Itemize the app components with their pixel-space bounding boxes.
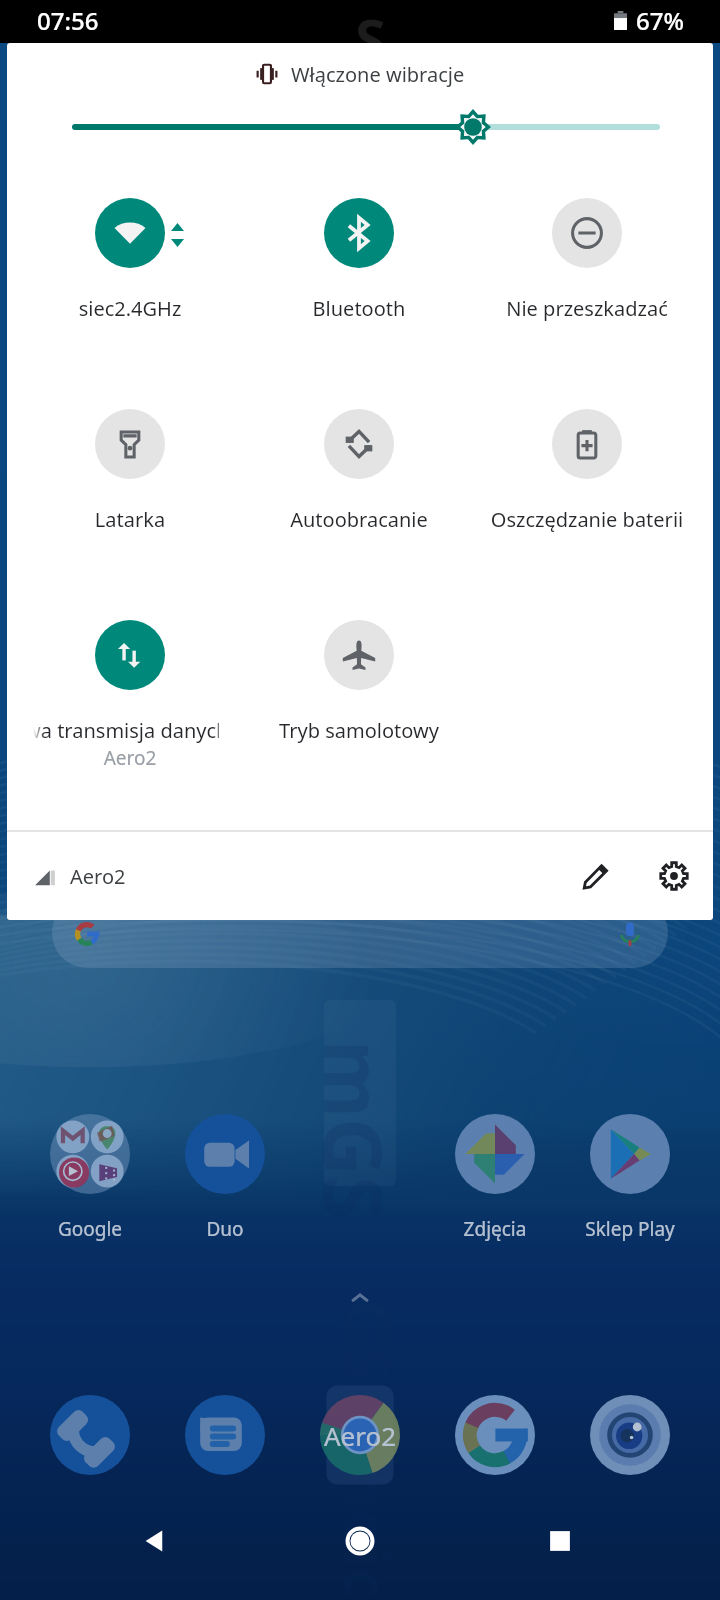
button[interactable]: Camera	[590, 1395, 670, 1475]
staticText: Google	[23, 1216, 157, 1242]
staticText: GSMchoice	[310, 1300, 410, 1600]
button[interactable]: Aero2	[34, 863, 126, 890]
staticText: 67%	[636, 4, 684, 37]
staticText: siec2.4GHz	[20, 295, 240, 322]
staticText: Nie przeszkadzać	[477, 295, 697, 322]
button[interactable]: Tryb samolotowy	[249, 620, 469, 780]
staticText: Aero2	[70, 863, 126, 890]
button[interactable]: Oszczędzanie baterii	[477, 409, 697, 569]
staticText: Oszczędzanie baterii	[477, 506, 697, 533]
button[interactable]: Back	[130, 1515, 182, 1567]
button[interactable]: Zdjęcia	[428, 1114, 562, 1244]
button[interactable]: Bluetooth	[249, 198, 469, 358]
staticText: 07:56	[37, 4, 99, 37]
button[interactable]: Sklep Play	[563, 1114, 697, 1244]
staticText: Włączone wibracje	[291, 61, 465, 88]
button[interactable]: Google	[455, 1395, 535, 1475]
button[interactable]: Recents	[534, 1515, 586, 1567]
button[interactable]: Search	[52, 898, 668, 968]
staticText: Zdjęcia	[428, 1216, 562, 1242]
button[interactable]: Settings	[650, 852, 698, 900]
staticText: wa transmisja danych	[33, 717, 219, 744]
button[interactable]: Autoobracanie	[249, 409, 469, 569]
button[interactable]: Home	[334, 1515, 386, 1567]
staticText: Aero2	[20, 745, 240, 771]
staticText: Latarka	[20, 506, 240, 533]
button[interactable]: Włączone wibracje	[7, 55, 713, 93]
staticText: Tryb samolotowy	[249, 717, 469, 744]
button[interactable]: Messages	[185, 1395, 265, 1475]
staticText: Autoobracanie	[249, 506, 469, 533]
button[interactable]: Latarka	[20, 409, 240, 569]
staticText: Duo	[158, 1216, 292, 1242]
button[interactable]: Nie przeszkadzać	[477, 198, 697, 358]
button[interactable]: Duo	[158, 1114, 292, 1244]
button[interactable]: Chrome	[320, 1395, 400, 1475]
staticText: Sklep Play	[563, 1216, 697, 1242]
button[interactable]: Google	[23, 1114, 157, 1244]
button[interactable]: Edit	[572, 852, 620, 900]
staticText: Aero2	[290, 1418, 430, 1453]
staticText: S	[355, 0, 386, 43]
button[interactable]: siec2.4GHz	[20, 198, 240, 358]
staticText: Bluetooth	[249, 295, 469, 322]
button[interactable]: Brightness	[7, 100, 713, 152]
button[interactable]: Phone	[50, 1395, 130, 1475]
button[interactable]: wa transmisja danych	[20, 620, 240, 780]
staticText: mGSM	[310, 1040, 410, 1260]
